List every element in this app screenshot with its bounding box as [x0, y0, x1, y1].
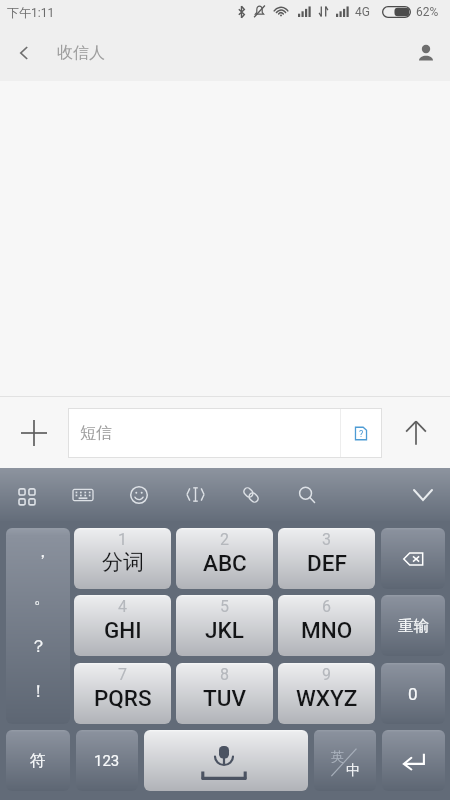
button[interactable]: Text cursor: [167, 468, 223, 521]
staticText: WXYZ: [296, 685, 358, 711]
button[interactable]: 8: [176, 663, 273, 724]
staticText: 中: [346, 762, 360, 780]
button[interactable]: 短信: [68, 408, 382, 458]
button[interactable]: Keyboard: [55, 468, 111, 521]
staticText: ，: [34, 541, 51, 562]
staticText: 8: [220, 665, 229, 684]
staticText: ABC: [203, 550, 247, 576]
staticText: 分词: [102, 549, 144, 575]
staticText: 收信人: [57, 43, 105, 63]
button[interactable]: 123: [76, 730, 138, 791]
button[interactable]: 7: [74, 663, 171, 724]
button[interactable]: Back: [0, 29, 48, 77]
staticText: TUV: [203, 685, 246, 711]
button[interactable]: 重输: [381, 595, 445, 656]
button[interactable]: Punctuation: [6, 528, 70, 724]
staticText: 英: [331, 748, 344, 764]
staticText: MNO: [301, 617, 353, 643]
staticText: 1: [118, 530, 127, 549]
staticText: 123: [94, 752, 120, 770]
button[interactable]: 4: [74, 595, 171, 656]
staticText: 62%: [416, 5, 439, 19]
button[interactable]: Voice input and space: [144, 730, 308, 791]
staticText: 9: [322, 665, 331, 684]
staticText: 下午1:11: [7, 5, 55, 20]
staticText: 重输: [398, 616, 429, 636]
staticText: 6: [322, 597, 331, 616]
button[interactable]: 0: [381, 663, 445, 724]
button[interactable]: Add attachment: [0, 399, 68, 467]
button[interactable]: Send: [382, 399, 450, 467]
button[interactable]: 6: [278, 595, 375, 656]
staticText: 3: [322, 530, 331, 549]
button[interactable]: Apps: [0, 468, 55, 521]
staticText: 4G: [355, 5, 370, 19]
button[interactable]: 5: [176, 595, 273, 656]
button[interactable]: Search: [279, 468, 335, 521]
button[interactable]: 1: [74, 528, 171, 589]
staticText: GHI: [104, 617, 142, 643]
staticText: 0: [408, 684, 418, 704]
staticText: ?: [359, 429, 364, 440]
button[interactable]: Enter: [382, 730, 445, 791]
button[interactable]: Switch language: [314, 730, 376, 791]
staticText: PQRS: [94, 685, 152, 711]
staticText: ？: [30, 636, 47, 657]
button[interactable]: Delete: [381, 528, 445, 589]
button[interactable]: 9: [278, 663, 375, 724]
staticText: 2: [220, 530, 229, 549]
staticText: ！: [30, 681, 47, 702]
staticText: 。: [34, 587, 51, 608]
staticText: 7: [118, 665, 127, 684]
staticText: 5: [220, 597, 229, 616]
staticText: JKL: [205, 617, 244, 643]
button[interactable]: 2: [176, 528, 273, 589]
button[interactable]: 符: [6, 730, 70, 791]
staticText: 短信: [80, 423, 340, 443]
button[interactable]: Hide keyboard: [395, 468, 450, 521]
button[interactable]: 3: [278, 528, 375, 589]
staticText: DEF: [307, 550, 347, 576]
staticText: 符: [30, 751, 46, 771]
staticText: 4: [118, 597, 127, 616]
button[interactable]: Clip: [223, 468, 279, 521]
button[interactable]: Emoji: [111, 468, 167, 521]
button[interactable]: Contacts: [402, 29, 450, 77]
